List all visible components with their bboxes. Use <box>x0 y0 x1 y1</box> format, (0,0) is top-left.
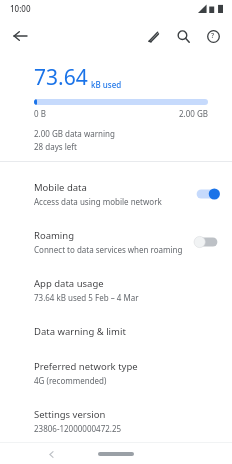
button[interactable]: Toggle on <box>194 186 220 202</box>
button[interactable]: Preferred network type <box>0 349 232 397</box>
staticText: Mobile data <box>34 181 87 194</box>
button[interactable]: Edit <box>140 23 166 49</box>
button[interactable]: Search <box>170 23 196 49</box>
staticText: 0 B <box>34 108 46 119</box>
button[interactable]: Home <box>98 452 134 456</box>
staticText: Preferred network type <box>34 360 138 373</box>
staticText: 28 days left <box>34 141 77 152</box>
staticText: ? <box>211 31 215 41</box>
staticText: 2.00 GB <box>179 108 208 119</box>
staticText: 2.00 GB data warning <box>34 128 115 139</box>
button[interactable]: App data usage <box>0 266 232 314</box>
staticText: 10:00 <box>10 3 31 14</box>
button[interactable]: Help <box>200 23 226 49</box>
button[interactable]: Back <box>44 447 58 461</box>
button[interactable]: Back <box>6 22 34 50</box>
button[interactable]: Toggle off <box>194 234 220 250</box>
staticText: 73.64 kB used 5 Feb – 4 Mar <box>34 292 139 303</box>
staticText: 73.64 <box>34 63 88 92</box>
staticText: kB used <box>91 79 122 90</box>
staticText: Access data using mobile network <box>34 196 162 207</box>
staticText: Data warning & limit <box>34 325 126 338</box>
staticText: Connect to data services when roaming <box>34 244 183 255</box>
button[interactable]: Settings version <box>0 397 232 442</box>
button[interactable]: Mobile data <box>0 170 232 218</box>
button[interactable]: Roaming <box>0 218 232 266</box>
staticText: Settings version <box>34 408 106 421</box>
button[interactable]: Data warning & limit <box>0 314 232 349</box>
staticText: 23806-12000000472.25 <box>34 423 122 434</box>
staticText: Roaming <box>34 229 75 242</box>
staticText: App data usage <box>34 277 104 290</box>
staticText: 4G (recommended) <box>34 375 107 386</box>
